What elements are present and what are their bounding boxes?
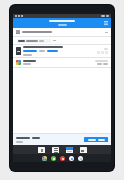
button[interactable]: More options — [13, 28, 111, 36]
button[interactable]: Recent app — [66, 147, 73, 153]
button[interactable]: Filter — [52, 39, 56, 43]
button[interactable]: More options — [104, 30, 108, 34]
button[interactable] — [13, 58, 111, 67]
button[interactable] — [13, 45, 111, 57]
button[interactable]: App 4 — [78, 156, 83, 161]
button[interactable]: Recent app — [80, 147, 87, 153]
button[interactable]: App 2 — [60, 156, 65, 161]
button[interactable]: App 1 — [51, 156, 56, 161]
button[interactable]: App 0 — [42, 156, 47, 161]
button[interactable]: Menu — [103, 20, 109, 26]
button[interactable]: Recent app — [52, 147, 59, 153]
button[interactable] — [84, 137, 108, 142]
button[interactable]: Recent app — [38, 147, 45, 153]
button[interactable] — [17, 39, 51, 43]
button[interactable]: App 3 — [69, 156, 74, 161]
